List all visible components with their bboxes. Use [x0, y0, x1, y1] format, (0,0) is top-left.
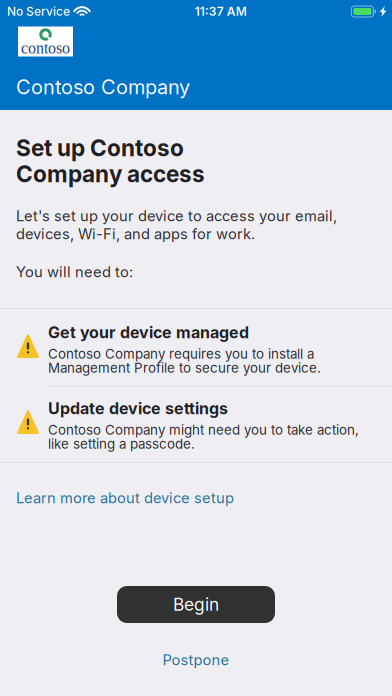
staticText: Management Profile to secure your device… — [48, 360, 321, 376]
staticText: Get your device managed — [48, 323, 249, 342]
staticText: Let's set up your device to access your … — [16, 207, 337, 225]
staticText: 11:37 AM — [195, 4, 247, 19]
staticText: contoso — [21, 39, 70, 57]
staticText: Begin — [173, 594, 219, 615]
staticText: Update device settings — [48, 399, 228, 418]
button[interactable]: Begin — [117, 586, 275, 623]
staticText: Contoso Company might need you to take a… — [48, 422, 359, 438]
button[interactable]: Postpone — [162, 652, 229, 668]
staticText: Company access — [16, 161, 205, 187]
staticText: Set up Contoso — [16, 135, 184, 161]
staticText: No Service — [7, 4, 70, 19]
staticText: like setting a passcode. — [48, 436, 195, 452]
staticText: Contoso Company — [16, 75, 190, 99]
staticText: Learn more about device setup — [16, 489, 234, 507]
staticText: You will need to: — [16, 263, 133, 281]
staticText: Postpone — [162, 651, 229, 669]
staticText: devices, Wi-Fi, and apps for work. — [16, 225, 255, 243]
staticText: Contoso Company requires you to install … — [48, 346, 314, 362]
button[interactable]: Learn more about device setup — [16, 490, 234, 506]
